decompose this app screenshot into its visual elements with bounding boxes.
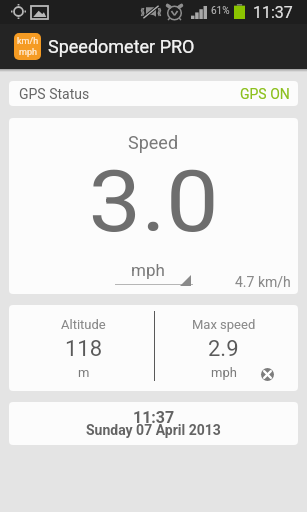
button[interactable]: mph bbox=[115, 258, 193, 288]
staticText: m bbox=[78, 365, 90, 380]
staticText: mph bbox=[19, 47, 37, 58]
button[interactable]: GPS Status bbox=[9, 81, 298, 106]
staticText: mph bbox=[211, 365, 237, 380]
staticText: 61% bbox=[211, 5, 230, 17]
staticText: 118 bbox=[65, 336, 103, 362]
button[interactable]: Max speed bbox=[151, 305, 296, 391]
staticText: 2.9 bbox=[208, 336, 239, 362]
staticText: Sunday 07 April 2013 bbox=[86, 422, 221, 438]
staticText: Altitude bbox=[61, 317, 106, 332]
staticText: 3.0 bbox=[89, 151, 219, 252]
staticText: 11:37 bbox=[133, 408, 175, 427]
staticText: Speed bbox=[128, 132, 179, 153]
button[interactable]: Speedometer PRO app icon bbox=[14, 33, 41, 60]
staticText: Max speed bbox=[192, 317, 256, 332]
staticText: mph bbox=[131, 260, 165, 280]
staticText: GPS Status bbox=[19, 86, 90, 102]
staticText: 11:37 bbox=[253, 3, 293, 22]
staticText: km/h bbox=[17, 36, 39, 47]
button[interactable]: Reset max speed bbox=[261, 368, 274, 381]
staticText: Speedometer PRO bbox=[48, 36, 195, 57]
button[interactable]: Altitude bbox=[9, 305, 154, 391]
staticText: 4.7 km/h bbox=[235, 274, 291, 290]
staticText: GPS ON bbox=[240, 86, 290, 102]
